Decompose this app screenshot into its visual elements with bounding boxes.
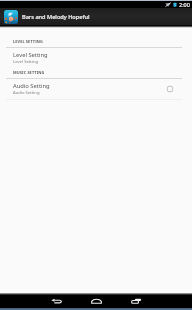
staticText: Audio Setting — [13, 82, 50, 90]
button[interactable]: Home — [85, 293, 107, 308]
staticText: Level Setting — [13, 51, 48, 59]
staticText: Audio Setting — [13, 90, 40, 96]
staticText: Level Setting — [13, 59, 39, 65]
button[interactable]: Back — [45, 293, 67, 308]
staticText: MUSIC SETTING — [13, 70, 45, 75]
button[interactable]: Level Setting — [0, 47, 192, 68]
button[interactable]: Recent apps — [125, 293, 147, 308]
staticText: 2:00 — [179, 1, 190, 8]
staticText: LEVEL SETTING — [13, 39, 43, 44]
button[interactable]: Audio Setting — [0, 78, 192, 99]
staticText: Bars and Melody Hopeful — [22, 13, 90, 21]
